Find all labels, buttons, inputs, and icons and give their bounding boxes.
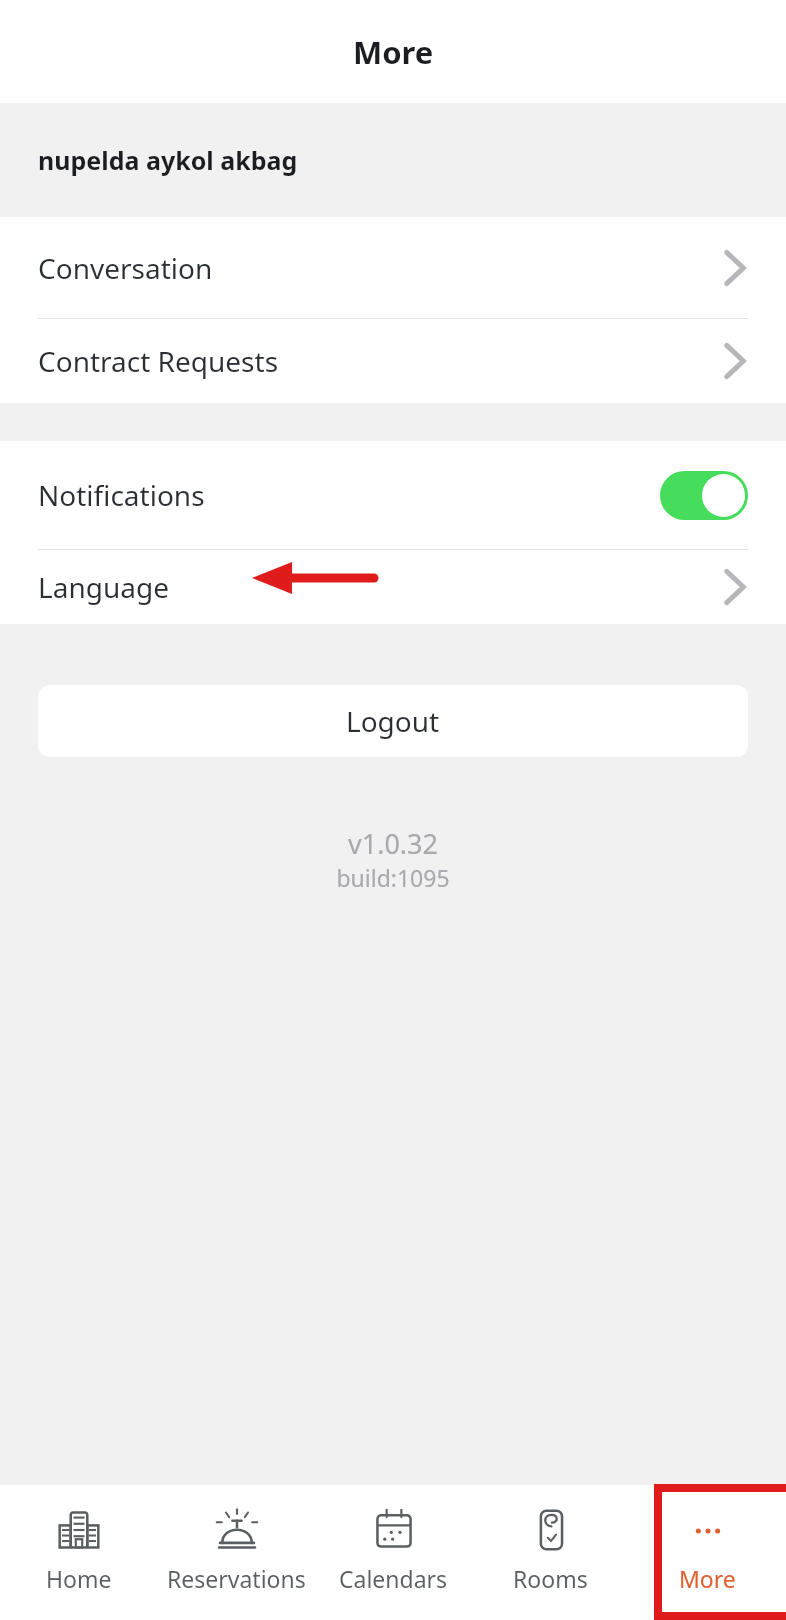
button[interactable]: Notifications	[0, 441, 786, 549]
button[interactable]: Rooms	[472, 1485, 629, 1620]
staticText: v1.0.32	[0, 825, 786, 862]
staticText: nupelda aykol akbag	[38, 143, 298, 177]
staticText: Calendars	[339, 1563, 448, 1594]
staticText: Contract Requests	[38, 342, 279, 380]
staticText: Reservations	[167, 1563, 306, 1594]
staticText: More	[353, 31, 434, 73]
staticText: Home	[46, 1563, 112, 1594]
button[interactable]: Language	[0, 550, 786, 624]
button[interactable]: Reservations	[158, 1485, 315, 1620]
button[interactable]: Contract Requests	[0, 319, 786, 403]
button[interactable]: More	[629, 1485, 786, 1620]
staticText: Language	[38, 568, 169, 606]
staticText: build:1095	[0, 862, 786, 893]
button[interactable]: Calendars	[315, 1485, 472, 1620]
button[interactable]: Notifications toggle, on	[660, 471, 748, 520]
staticText: Rooms	[513, 1563, 588, 1594]
button[interactable]: Home	[0, 1485, 158, 1620]
staticText: Conversation	[38, 249, 213, 287]
staticText: Notifications	[38, 476, 205, 514]
button[interactable]: Conversation	[0, 217, 786, 318]
staticText: More	[679, 1563, 736, 1594]
button[interactable]: Logout	[38, 685, 748, 757]
staticText: Logout	[346, 702, 440, 740]
